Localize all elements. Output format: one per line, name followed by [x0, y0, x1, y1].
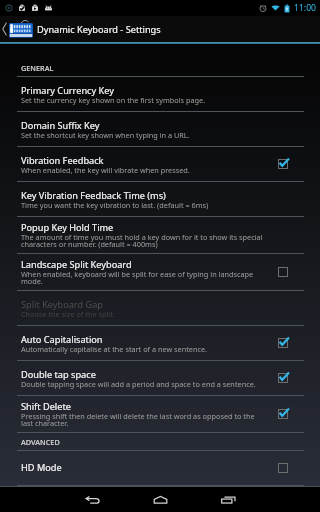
staticText: Time you want the key vibration to last.…: [21, 202, 209, 209]
button[interactable]: HD Mode: [0, 451, 320, 486]
staticText: Key Vibration Feedback Time (ms): [21, 190, 166, 202]
button[interactable]: Key Vibration Feedback Time (ms): [0, 182, 320, 217]
staticText: 11:00: [294, 2, 316, 14]
staticText: GENERAL: [21, 63, 54, 73]
button[interactable]: Home: [126, 487, 194, 512]
staticText: Pressing shift then delete will delete t…: [21, 413, 264, 427]
button[interactable]: Auto Capitalisation: [0, 326, 320, 361]
button[interactable]: Primary Currency Key: [0, 77, 320, 112]
button[interactable]: Recent apps: [194, 487, 262, 512]
button[interactable]: Double tap space: [0, 361, 320, 396]
button[interactable]: Landscape Split Keyboard: [0, 254, 320, 291]
staticText: When enabled, keyboard will be split for…: [21, 271, 264, 285]
staticText: Shift Delete: [21, 401, 71, 413]
staticText: Set the currency key shown on the first …: [21, 97, 206, 104]
staticText: HD Mode: [21, 462, 62, 474]
staticText: Choose the size of the split.: [21, 311, 115, 318]
staticText: Popup Key Hold Time: [21, 222, 114, 234]
staticText: The amount of time you must hold a key d…: [21, 234, 264, 248]
staticText: Landscape Split Keyboard: [21, 259, 132, 271]
staticText: ADVANCED: [21, 437, 60, 447]
staticText: Dynamic Keyboard - Settings: [37, 23, 161, 36]
staticText: Double tap space: [21, 369, 96, 381]
staticText: Vibration Feedback: [21, 155, 104, 167]
staticText: Set the shortcut key shown when typing i…: [21, 132, 190, 139]
staticText: Double tapping space will add a period a…: [21, 381, 256, 388]
staticText: Auto Capitalisation: [21, 334, 103, 346]
button[interactable]: Split Keyboard Gap: [0, 291, 320, 326]
button[interactable]: Navigate up: [0, 16, 320, 42]
staticText: Domain Suffix Key: [21, 120, 100, 132]
staticText: Automatically capitalise at the start of…: [21, 346, 208, 353]
staticText: When enabled, the key will vibrate when …: [21, 167, 190, 174]
staticText: Split Keyboard Gap: [21, 299, 104, 311]
button[interactable]: Domain Suffix Key: [0, 112, 320, 147]
button[interactable]: Shift Delete: [0, 396, 320, 433]
button[interactable]: Popup Key Hold Time: [0, 217, 320, 254]
button[interactable]: Back: [58, 487, 126, 512]
button[interactable]: Vibration Feedback: [0, 147, 320, 182]
staticText: Primary Currency Key: [21, 85, 114, 97]
